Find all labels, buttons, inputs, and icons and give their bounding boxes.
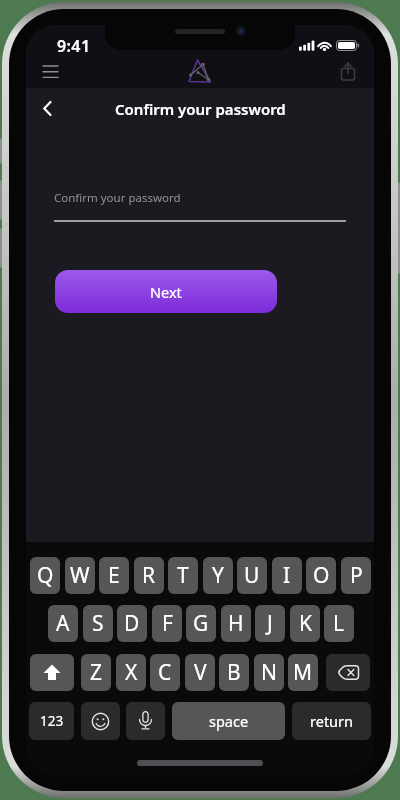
button[interactable]: P [341,557,371,594]
button[interactable] [81,702,120,740]
button[interactable] [34,94,60,122]
button[interactable]: W [65,557,95,594]
button[interactable] [30,654,74,691]
button[interactable]: X [116,654,146,691]
button[interactable]: V [185,654,215,691]
button[interactable]: J [255,605,285,642]
staticText: R [142,561,156,590]
staticText: A [56,609,70,638]
button[interactable] [326,654,370,691]
staticText: return [310,711,354,731]
staticText: 9:41 [57,35,91,52]
button[interactable]: H [221,605,251,642]
staticText: O [313,561,330,590]
staticText: Z [90,658,103,687]
button[interactable]: O [306,557,336,594]
staticText: U [244,561,260,590]
button[interactable]: Next [55,270,277,313]
button[interactable]: space [172,702,285,740]
button[interactable]: Z [81,654,111,691]
button[interactable]: U [237,557,267,594]
button[interactable]: R [134,557,164,594]
button[interactable]: M [288,654,318,691]
button[interactable]: A [48,605,78,642]
staticText: G [193,609,209,638]
staticText: H [228,609,244,638]
staticText: N [261,658,277,687]
staticText: T [177,561,189,590]
staticText: M [293,658,313,687]
staticText: 123 [40,712,64,730]
button[interactable]: return [292,702,371,740]
button[interactable]: E [99,557,129,594]
staticText: Y [212,561,224,590]
button[interactable]: D [117,605,147,642]
staticText: E [108,561,120,590]
staticText: B [227,658,241,687]
staticText: W [70,561,90,590]
staticText: J [267,609,273,638]
button[interactable]: B [219,654,249,691]
button[interactable]: Q [30,557,60,594]
staticText: K [299,609,312,638]
button[interactable]: C [150,654,180,691]
staticText: X [125,658,138,687]
staticText: D [124,609,140,638]
button[interactable]: I [272,557,302,594]
staticText: Q [37,561,54,590]
button[interactable]: T [168,557,198,594]
button[interactable]: L [324,605,354,642]
button[interactable]: 123 [29,702,74,740]
button[interactable]: K [290,605,320,642]
staticText: I [283,561,291,590]
button[interactable] [334,58,362,84]
button[interactable]: G [186,605,216,642]
staticText: S [92,609,104,638]
button[interactable]: S [83,605,113,642]
staticText: C [158,658,172,687]
button[interactable] [126,702,165,740]
staticText: P [350,561,363,590]
button[interactable]: N [254,654,284,691]
staticText: V [194,658,207,687]
staticText: space [209,711,249,731]
staticText: Confirm your password [54,190,181,206]
staticText: Confirm your password [115,99,286,119]
staticText: L [333,609,345,638]
staticText: Next [150,282,182,302]
staticText: F [162,609,173,638]
button[interactable]: Y [203,557,233,594]
button[interactable] [37,59,64,83]
button[interactable]: F [152,605,182,642]
